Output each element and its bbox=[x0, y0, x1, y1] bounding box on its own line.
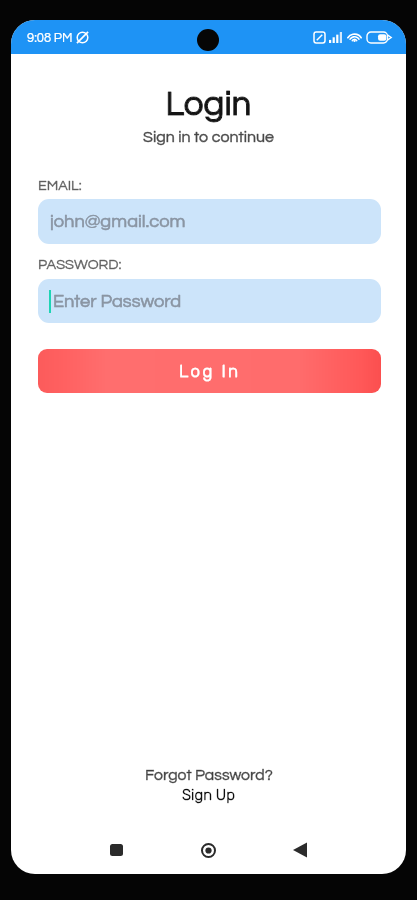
staticText: 9:08 PM bbox=[27, 31, 73, 44]
button[interactable]: Back bbox=[280, 830, 320, 870]
staticText: Forgot Password? bbox=[145, 767, 273, 783]
staticText: PASSWORD: bbox=[38, 257, 122, 272]
staticText: Sign in to continue bbox=[11, 129, 406, 145]
staticText: john@gmail.com bbox=[50, 212, 186, 231]
button[interactable]: Home bbox=[188, 830, 228, 870]
staticText: john@gmail.com bbox=[50, 212, 186, 231]
button[interactable]: Log In bbox=[38, 349, 381, 393]
staticText: EMAIL: bbox=[38, 178, 82, 193]
staticText: PASSWORD: bbox=[38, 257, 122, 272]
button[interactable]: Enter Password bbox=[38, 279, 381, 323]
staticText: Enter Password bbox=[53, 292, 182, 311]
button[interactable]: john@gmail.com bbox=[38, 199, 381, 244]
staticText: Login bbox=[11, 86, 406, 122]
staticText: EMAIL: bbox=[38, 178, 82, 193]
staticText: Sign Up bbox=[182, 786, 235, 804]
button[interactable]: Recent apps bbox=[96, 830, 136, 870]
staticText: Forgot Password? bbox=[145, 767, 273, 783]
button[interactable]: Forgot Password? bbox=[135, 766, 283, 784]
button[interactable]: Sign Up bbox=[172, 785, 245, 805]
staticText: Log In bbox=[179, 361, 241, 381]
staticText: Login bbox=[11, 86, 406, 122]
staticText: Sign in to continue bbox=[11, 129, 406, 145]
staticText: Enter Password bbox=[53, 292, 182, 311]
